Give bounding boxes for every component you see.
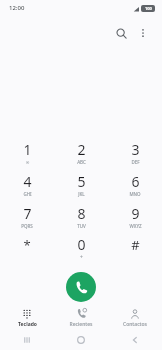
button[interactable]: Contactos — [108, 306, 162, 330]
staticText: 4 — [23, 172, 32, 191]
staticText: 7 — [23, 204, 32, 223]
button[interactable]: 1 — [0, 136, 54, 168]
button[interactable]: Home — [54, 330, 108, 350]
button[interactable]: 5 — [54, 168, 108, 200]
staticText: MNO — [129, 191, 141, 197]
staticText: 6 — [131, 172, 140, 191]
staticText: * — [23, 236, 31, 254]
staticText: DEF — [131, 159, 140, 165]
button[interactable]: Recientes — [54, 306, 108, 330]
staticText: 2 — [77, 140, 86, 159]
staticText: 100 — [145, 6, 152, 11]
staticText: PQRS — [21, 223, 33, 229]
staticText: TUV — [77, 223, 86, 229]
button[interactable]: 0 — [54, 232, 108, 264]
staticText: WXYZ — [129, 223, 142, 229]
button[interactable]: # — [108, 232, 162, 264]
button[interactable]: * — [0, 232, 54, 264]
staticText: 8 — [77, 204, 86, 223]
button[interactable]: 7 — [0, 200, 54, 232]
button[interactable]: Back — [108, 330, 162, 350]
staticText: 3 — [131, 140, 140, 159]
staticText: # — [131, 236, 140, 254]
staticText: 5 — [77, 172, 86, 191]
button[interactable]: 6 — [108, 168, 162, 200]
staticText: 9 — [131, 204, 140, 223]
staticText: ABC — [77, 159, 86, 165]
button[interactable]: Recent apps — [0, 330, 54, 350]
button[interactable]: Call — [66, 272, 96, 302]
staticText: Contactos — [123, 321, 147, 328]
staticText: 12:00 — [9, 4, 25, 12]
button[interactable]: 9 — [108, 200, 162, 232]
button[interactable]: Search — [110, 22, 132, 44]
button[interactable]: 2 — [54, 136, 108, 168]
button[interactable]: More options — [132, 22, 154, 44]
staticText: Teclado — [18, 321, 37, 328]
button[interactable]: 8 — [54, 200, 108, 232]
staticText: GHI — [23, 191, 32, 197]
staticText: Recientes — [69, 321, 93, 328]
button[interactable]: 4 — [0, 168, 54, 200]
staticText: + — [80, 254, 83, 261]
staticText: 0 — [77, 235, 86, 254]
staticText: ∞ — [25, 159, 30, 165]
staticText: JKL — [78, 191, 85, 197]
button[interactable]: 3 — [108, 136, 162, 168]
button[interactable]: Teclado — [0, 306, 54, 330]
staticText: 1 — [23, 140, 32, 159]
